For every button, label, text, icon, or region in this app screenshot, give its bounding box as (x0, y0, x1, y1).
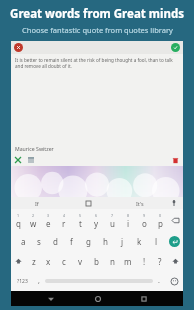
staticText: 3 (47, 213, 50, 218)
staticText: It is better to remain silent at the ris… (15, 57, 179, 69)
staticText: t (79, 218, 82, 229)
button[interactable]: Save (171, 43, 180, 52)
staticText: 0 (159, 213, 162, 218)
staticText: x (46, 256, 51, 267)
staticText: ?123 (17, 278, 28, 285)
button[interactable]: Voice input (165, 197, 183, 209)
staticText: It's (136, 200, 144, 207)
button[interactable]: l (148, 231, 165, 251)
button[interactable]: Clipboard (63, 197, 114, 209)
button[interactable]: m (120, 251, 136, 271)
button[interactable]: k (131, 231, 148, 251)
staticText: l (155, 236, 158, 247)
staticText: Great words from Great minds (10, 6, 184, 22)
button[interactable]: ! (136, 251, 152, 271)
staticText: 8 (127, 213, 130, 218)
staticText: d (53, 236, 58, 247)
staticText: 7 (111, 213, 114, 218)
staticText: j (121, 236, 124, 247)
button[interactable]: v (72, 251, 88, 271)
button[interactable]: Emoji (165, 271, 183, 291)
staticText: Choose fantastic quote from quotes libra… (22, 25, 173, 35)
staticText: w (30, 218, 37, 229)
button[interactable]: Maurice Switzer (11, 143, 183, 154)
staticText: b (94, 256, 99, 267)
staticText: n (110, 256, 115, 267)
staticText: If (35, 200, 39, 207)
button[interactable]: 9 (136, 210, 152, 231)
button[interactable]: Delete (171, 156, 180, 165)
button[interactable]: d (47, 231, 63, 251)
button[interactable]: Space (45, 271, 153, 291)
staticText: e (46, 218, 51, 229)
button[interactable]: Recents (136, 291, 151, 306)
button[interactable]: Shift (11, 251, 26, 271)
button[interactable]: Back (43, 291, 58, 306)
button[interactable]: c (56, 251, 72, 271)
button[interactable]: g (80, 231, 97, 251)
button[interactable]: ? (152, 251, 168, 271)
button[interactable]: Shift right (168, 251, 183, 271)
staticText: Maurice Switzer (15, 145, 54, 152)
button[interactable]: j (114, 231, 131, 251)
staticText: o (142, 218, 147, 229)
staticText: i (127, 218, 130, 229)
staticText: y (94, 218, 99, 229)
staticText: 5 (79, 213, 82, 218)
button[interactable]: It's (114, 197, 165, 209)
button[interactable]: x (41, 251, 56, 271)
button[interactable]: z (26, 251, 41, 271)
button[interactable]: Share (14, 156, 22, 164)
button[interactable]: Cancel (14, 43, 23, 52)
staticText: ! (143, 256, 146, 267)
button[interactable]: n (104, 251, 120, 271)
staticText: m (124, 256, 132, 267)
staticText: 6 (95, 213, 98, 218)
staticText: c (62, 256, 66, 267)
button[interactable]: 1 (11, 210, 26, 231)
staticText: ? (158, 256, 162, 267)
button[interactable]: ?123 (11, 271, 33, 291)
button[interactable]: s (31, 231, 47, 251)
button[interactable]: f (63, 231, 80, 251)
button[interactable]: 5 (72, 210, 88, 231)
button[interactable]: , (33, 271, 45, 291)
button[interactable]: 2 (26, 210, 41, 231)
staticText: 4 (63, 213, 66, 218)
button[interactable]: a (15, 231, 31, 251)
button[interactable]: If (11, 197, 63, 209)
staticText: , (38, 276, 40, 286)
button[interactable]: 3 (41, 210, 56, 231)
button[interactable]: 7 (104, 210, 120, 231)
button[interactable]: Image (27, 156, 35, 164)
button[interactable]: 4 (56, 210, 72, 231)
staticText: z (32, 256, 36, 267)
staticText: g (86, 236, 91, 247)
staticText: 2 (32, 213, 35, 218)
staticText: k (137, 236, 142, 247)
staticText: u (110, 218, 115, 229)
button[interactable]: Home (90, 291, 105, 306)
button[interactable]: 8 (120, 210, 136, 231)
staticText: r (62, 218, 66, 229)
button[interactable]: b (88, 251, 104, 271)
button[interactable]: Enter (165, 231, 183, 251)
staticText: 9 (143, 213, 146, 218)
button[interactable]: Backspace (168, 210, 183, 231)
staticText: s (37, 236, 41, 247)
staticText: v (78, 256, 83, 267)
button[interactable]: h (97, 231, 114, 251)
staticText: q (16, 218, 21, 229)
staticText: h (103, 236, 108, 247)
button[interactable]: 6 (88, 210, 104, 231)
staticText: a (21, 236, 26, 247)
button[interactable]: 0 (152, 210, 168, 231)
staticText: 1 (17, 213, 20, 218)
button[interactable]: . (153, 271, 165, 291)
staticText: f (70, 236, 73, 247)
staticText: . (158, 276, 160, 286)
staticText: p (158, 218, 163, 229)
button[interactable]: It is better to remain silent at the ris… (11, 54, 183, 143)
